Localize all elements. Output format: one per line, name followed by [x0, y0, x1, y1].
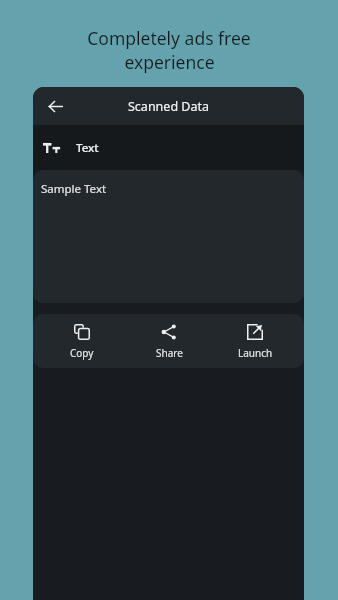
staticText: Text: [76, 140, 99, 156]
button[interactable]: Text: [33, 125, 304, 170]
staticText: Completely ads free: [87, 26, 251, 50]
staticText: experience: [124, 50, 215, 74]
staticText: Sample Text: [41, 181, 107, 197]
staticText: Copy: [70, 346, 94, 360]
button[interactable]: Share: [132, 318, 206, 365]
staticText: Share: [156, 346, 183, 360]
staticText: Scanned Data: [128, 98, 209, 115]
button[interactable]: Sample Text: [33, 170, 304, 303]
button[interactable]: Copy: [45, 318, 119, 365]
staticText: Launch: [238, 346, 273, 360]
button[interactable]: Launch: [218, 318, 292, 365]
button[interactable]: Back: [39, 90, 71, 122]
